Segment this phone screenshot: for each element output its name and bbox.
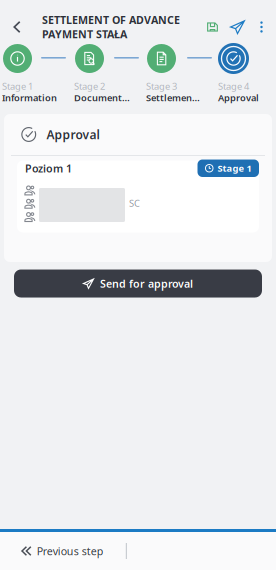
staticText: Poziom 1 [25, 161, 72, 175]
button[interactable]: Previous step [0, 532, 126, 570]
button[interactable]: Save [200, 6, 225, 48]
staticText: Approval [218, 91, 259, 104]
staticText: Settlemen… [146, 91, 200, 104]
staticText: Stage 3 [146, 80, 177, 92]
button[interactable]: Stage 3 [146, 43, 204, 104]
button[interactable]: Stage 4 [218, 43, 276, 104]
button[interactable]: More options [250, 6, 273, 48]
staticText: Stage 2 [74, 80, 105, 92]
staticText: Document… [74, 91, 130, 104]
staticText: Approval [46, 126, 99, 142]
button[interactable]: Send [225, 6, 250, 48]
button[interactable]: Send for approval [14, 269, 262, 297]
staticText: Information [2, 91, 57, 104]
staticText: Send for approval [100, 276, 193, 291]
button[interactable]: Stage 1 [2, 43, 60, 104]
staticText: SC [129, 197, 140, 209]
button[interactable]: Back [3, 6, 31, 48]
staticText: Stage 1 [2, 80, 33, 92]
staticText: Stage 1 [217, 162, 251, 174]
staticText: Previous step [37, 544, 104, 558]
staticText: SETTLEMENT OF ADVANCE PAYMENT STAŁA [42, 13, 180, 41]
button[interactable]: Stage 2 [74, 43, 132, 104]
staticText: Stage 4 [218, 80, 249, 92]
